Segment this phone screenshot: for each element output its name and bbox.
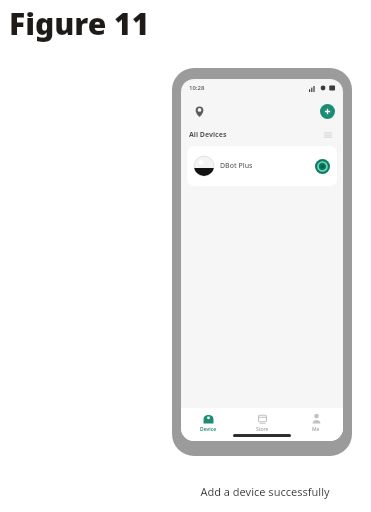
button[interactable]: Home location <box>189 101 209 121</box>
button[interactable]: Device <box>181 413 235 441</box>
button[interactable]: DBot Plus <box>187 146 337 186</box>
staticText: Add a device successfully <box>190 484 340 499</box>
staticText: DBot Plus <box>220 161 253 171</box>
button[interactable]: Add device <box>320 104 335 119</box>
staticText: Store <box>256 426 269 433</box>
button[interactable]: Device settings <box>315 159 330 174</box>
staticText: 10:28 <box>189 84 205 92</box>
button[interactable]: More options <box>321 129 335 141</box>
staticText: Me <box>312 426 320 433</box>
button[interactable]: Me <box>289 413 343 441</box>
button[interactable]: Store <box>235 413 289 441</box>
staticText: All Devices <box>189 130 227 140</box>
staticText: Device <box>200 426 217 433</box>
staticText: Figure 11 <box>9 3 150 44</box>
